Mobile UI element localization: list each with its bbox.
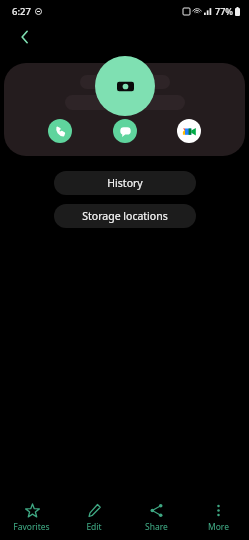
staticText: More xyxy=(208,521,229,533)
staticText: 77% xyxy=(215,5,233,17)
button[interactable]: Call xyxy=(48,119,72,143)
staticText: Share xyxy=(145,521,168,533)
button[interactable]: More xyxy=(187,498,249,537)
button[interactable]: Favorites xyxy=(0,498,63,537)
button[interactable]: Contact photo xyxy=(95,56,155,116)
staticText: Favorites xyxy=(13,521,50,533)
button[interactable]: Video call with Google Meet xyxy=(177,119,201,143)
staticText: Edit xyxy=(86,521,102,533)
button[interactable]: Share xyxy=(125,498,187,537)
button[interactable]: Back xyxy=(10,22,40,52)
button[interactable]: Storage locations xyxy=(54,204,196,228)
button[interactable]: Edit xyxy=(63,498,125,537)
button[interactable]: Message xyxy=(113,119,137,143)
staticText: 6:27 xyxy=(12,5,31,18)
staticText: Storage locations xyxy=(82,209,168,223)
button[interactable]: History xyxy=(54,171,196,195)
staticText: History xyxy=(107,176,143,190)
